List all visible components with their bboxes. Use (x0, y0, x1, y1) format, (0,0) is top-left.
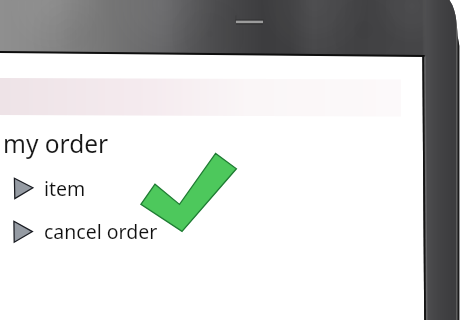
staticText: item (44, 175, 86, 202)
staticText: my order (3, 127, 109, 160)
staticText: cancel order (44, 218, 158, 245)
